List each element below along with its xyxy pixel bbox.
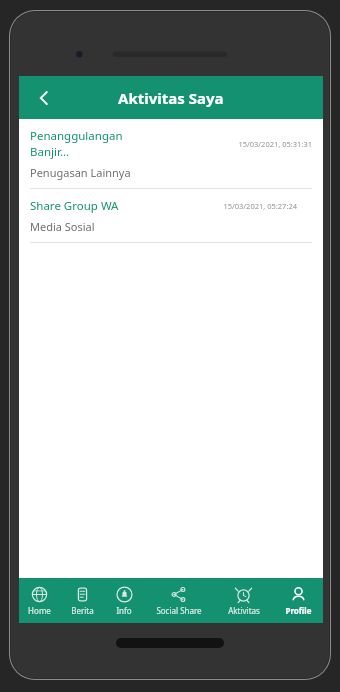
staticText: Aktivitas Saya [118,88,224,108]
staticText: Social Share [156,605,202,616]
button[interactable]: Social Share [143,578,214,623]
button[interactable]: Berita [60,578,105,623]
staticText: Penanggulangan Banjir... [30,128,134,160]
staticText: Info [116,605,132,616]
staticText: Berita [71,605,94,616]
button[interactable]: Home [19,578,60,623]
staticText: Penugasan Lainnya [30,165,131,180]
button[interactable]: Aktivitas [214,578,273,623]
button[interactable]: Profile [273,578,323,623]
button[interactable]: Info [105,578,143,623]
staticText: Media Sosial [30,219,95,234]
button[interactable]: Penanggulangan Banjir... [19,119,323,189]
staticText: 15/03/2021, 05:27:24 [223,201,297,211]
staticText: 15/03/2021, 05:31:31 [238,139,312,149]
staticText: Home [28,605,51,616]
staticText: Aktivitas [228,605,260,616]
button[interactable]: Share Group WA [19,189,323,243]
staticText: Share Group WA [30,198,119,214]
staticText: Profile [285,605,312,616]
button[interactable]: Back [25,79,63,117]
